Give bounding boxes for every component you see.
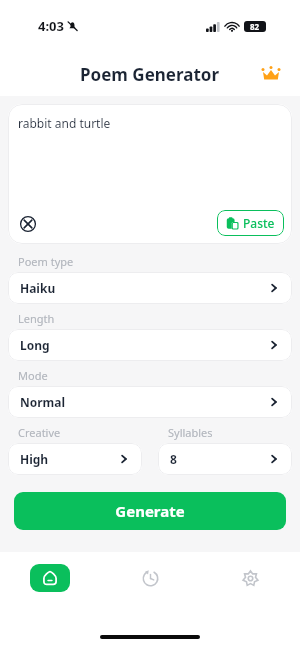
staticText: Syllables <box>168 425 213 440</box>
staticText: 82 <box>250 21 260 32</box>
staticText: Mode <box>18 368 48 383</box>
staticText: Poem type <box>18 254 74 269</box>
button[interactable]: Generate <box>14 492 286 530</box>
button[interactable]: 8 <box>158 443 292 475</box>
staticText: Poem Generator <box>80 63 220 86</box>
button[interactable]: History <box>130 558 170 598</box>
button[interactable]: Paste <box>217 210 284 236</box>
button[interactable]: High <box>8 443 142 475</box>
staticText: Generate <box>115 501 185 521</box>
staticText: rabbit and turtle <box>18 115 111 131</box>
staticText: Paste <box>243 215 275 231</box>
staticText: Creative <box>18 425 61 440</box>
button[interactable]: Normal <box>8 386 292 418</box>
staticText: Long <box>20 337 50 353</box>
button[interactable]: Premium <box>256 59 286 89</box>
button[interactable]: Home <box>30 564 70 592</box>
staticText: Haiku <box>20 280 56 296</box>
button[interactable]: Settings <box>230 558 270 598</box>
staticText: Length <box>18 311 55 326</box>
staticText: High <box>20 451 49 467</box>
button[interactable]: Haiku <box>8 272 292 304</box>
button[interactable]: Long <box>8 329 292 361</box>
staticText: Normal <box>20 394 66 410</box>
staticText: 8 <box>170 451 177 467</box>
staticText: 4:03 <box>38 17 64 35</box>
button[interactable]: Clear <box>16 212 40 236</box>
